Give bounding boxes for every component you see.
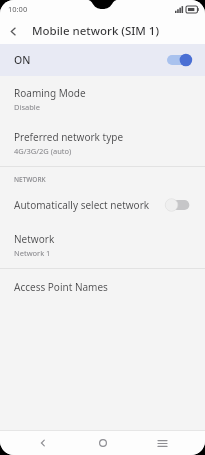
button[interactable]: Preferred network type <box>0 122 205 166</box>
button[interactable]: ON <box>0 44 205 76</box>
staticText: Network <box>14 232 55 246</box>
button[interactable]: Back <box>0 18 26 44</box>
button[interactable]: Automatically select network <box>0 187 205 223</box>
staticText: Disable <box>14 102 40 112</box>
button[interactable]: Roaming Mode <box>0 76 205 122</box>
button[interactable]: Back <box>26 431 60 455</box>
staticText: Automatically select network <box>14 198 150 212</box>
staticText: Access Point Names <box>14 280 108 294</box>
staticText: Roaming Mode <box>14 86 86 100</box>
staticText: Network 1 <box>14 248 51 258</box>
staticText: 4G/3G/2G (auto) <box>14 146 72 156</box>
button[interactable]: Network <box>0 223 205 268</box>
button[interactable]: Access Point Names <box>0 269 205 305</box>
staticText: NETWORK <box>14 175 46 184</box>
button[interactable]: Recent apps <box>145 431 179 455</box>
staticText: ON <box>14 53 31 67</box>
button[interactable]: Home <box>86 431 120 455</box>
staticText: Mobile network (SIM 1) <box>32 23 160 39</box>
staticText: 10:00 <box>8 4 28 14</box>
staticText: Preferred network type <box>14 130 124 144</box>
